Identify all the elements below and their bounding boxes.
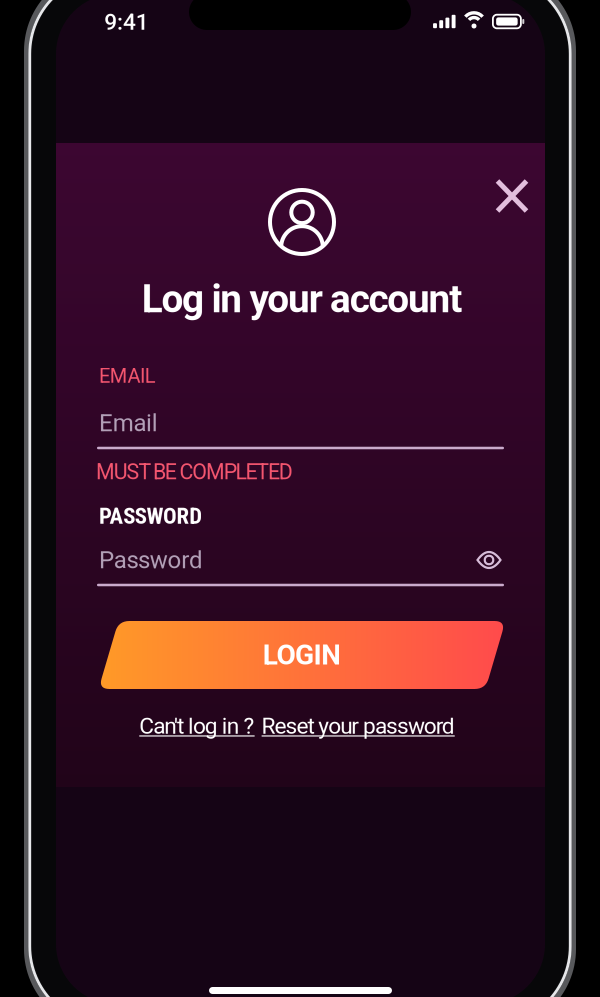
button[interactable]: LOGIN: [98, 621, 505, 689]
staticText: MUST BE COMPLETED: [96, 459, 293, 484]
button[interactable]: Can't log in ?: [139, 713, 255, 739]
staticText: Password: [99, 546, 203, 574]
staticText: LOGIN: [263, 639, 341, 671]
staticText: 9:41: [104, 9, 149, 35]
staticText: Email: [99, 409, 158, 437]
button[interactable]: Reset your password: [262, 713, 455, 739]
button[interactable]: Close: [482, 166, 541, 226]
staticText: PASSWORD: [99, 503, 202, 529]
staticText: Reset your password: [262, 713, 455, 739]
staticText: Can't log in ?: [139, 713, 255, 739]
staticText: Log in your account: [142, 276, 462, 322]
button[interactable]: Show password: [467, 542, 510, 578]
staticText: EMAIL: [99, 364, 156, 388]
